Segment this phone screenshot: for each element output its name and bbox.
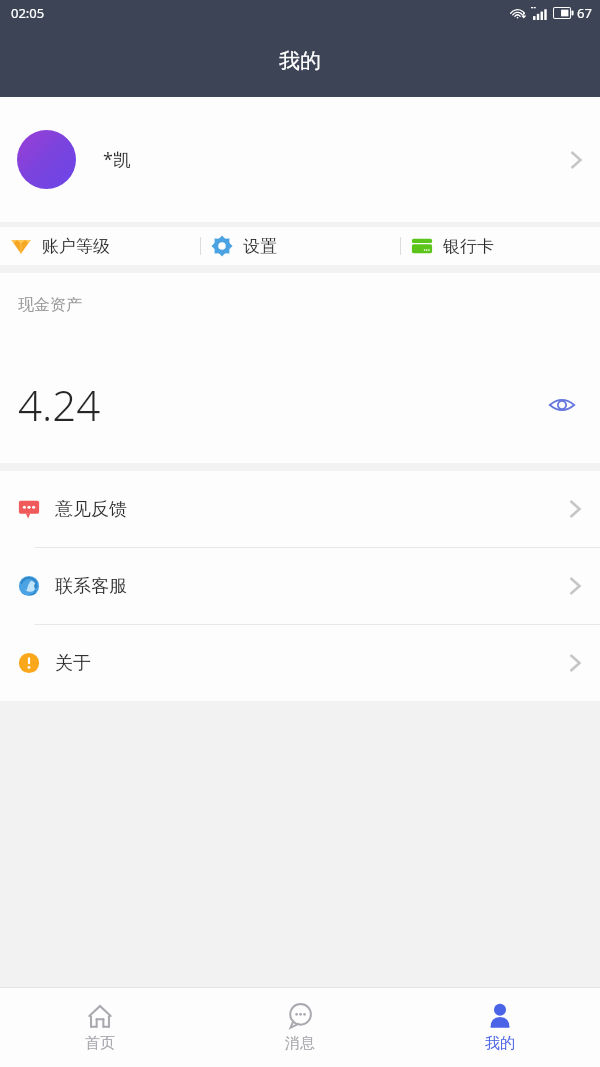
staticText: 设置 <box>243 236 277 257</box>
staticText: 联系客服 <box>55 575 127 598</box>
button[interactable]: 消息 <box>200 988 400 1067</box>
button[interactable]: Toggle balance visibility <box>542 385 582 425</box>
staticText: 02:05 <box>11 4 45 22</box>
staticText: *凯 <box>103 147 131 172</box>
staticText: 消息 <box>285 1034 315 1053</box>
staticText: 意见反馈 <box>55 498 127 521</box>
button[interactable]: 设置 <box>201 227 400 265</box>
button[interactable]: 账户等级 <box>0 227 200 265</box>
staticText: 现金资产 <box>18 295 82 315</box>
staticText: 账户等级 <box>42 236 110 257</box>
button[interactable]: 联系客服 <box>0 548 600 624</box>
button[interactable]: 银行卡 <box>401 227 600 265</box>
staticText: 67 <box>577 4 592 22</box>
button[interactable]: 我的 <box>400 988 600 1067</box>
staticText: 我的 <box>485 1034 515 1053</box>
staticText: 我的 <box>279 48 321 74</box>
staticText: 4.24 <box>18 376 101 433</box>
button[interactable]: 意见反馈 <box>0 471 600 547</box>
staticText: 关于 <box>55 652 91 675</box>
button[interactable]: 首页 <box>0 988 200 1067</box>
button[interactable]: 关于 <box>0 625 600 701</box>
staticText: 首页 <box>85 1034 115 1053</box>
button[interactable]: *凯 <box>0 97 600 222</box>
staticText: 银行卡 <box>443 236 494 257</box>
